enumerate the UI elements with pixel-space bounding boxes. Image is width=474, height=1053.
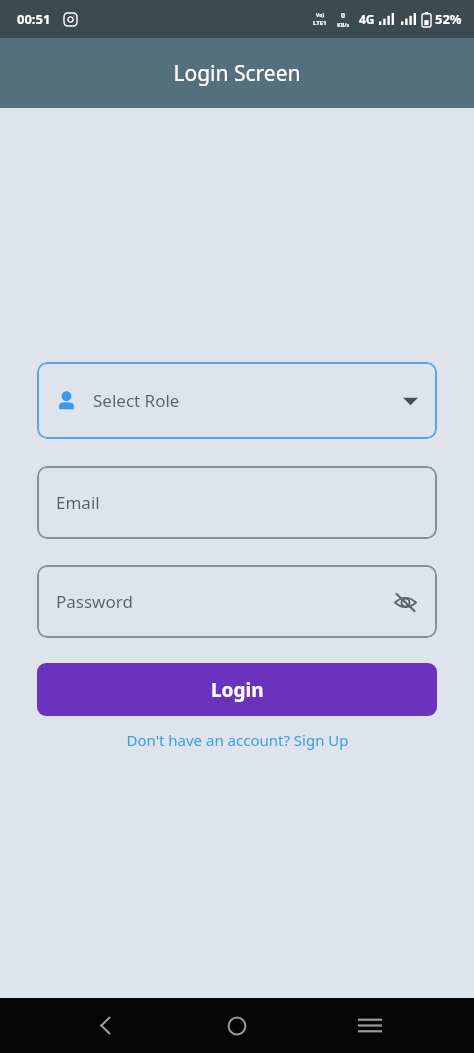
staticText: Select Role <box>93 389 180 412</box>
staticText: 0 <box>341 11 346 21</box>
staticText: Email <box>56 491 100 514</box>
staticText: Login <box>211 677 264 703</box>
button[interactable]: Recent apps <box>342 998 398 1053</box>
staticText: Password <box>56 590 133 613</box>
staticText: 00:51 <box>17 10 51 28</box>
button[interactable]: Select Role <box>37 362 437 439</box>
staticText: Vo) <box>316 12 324 19</box>
button[interactable]: Login <box>37 663 437 716</box>
staticText: KB/s <box>337 21 350 28</box>
button[interactable]: Toggle password visibility <box>390 587 420 617</box>
staticText: Login Screen <box>173 59 301 88</box>
button[interactable]: Email <box>37 466 437 539</box>
staticText: LTE1 <box>313 19 327 27</box>
button[interactable]: Back <box>77 998 133 1053</box>
staticText: 4G <box>359 11 375 27</box>
button[interactable]: Password <box>37 565 437 638</box>
button[interactable]: Don't have an account? Sign Up <box>120 727 355 753</box>
staticText: Don't have an account? Sign Up <box>126 730 349 750</box>
staticText: 52% <box>435 10 462 28</box>
button[interactable]: Home <box>209 998 265 1053</box>
